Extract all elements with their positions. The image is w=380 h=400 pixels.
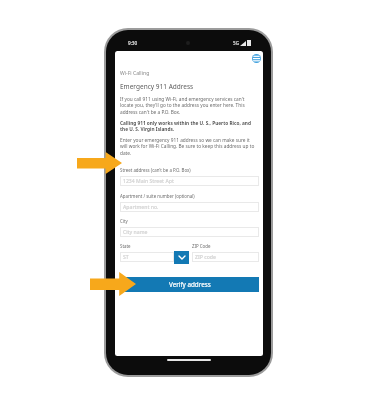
staticText: Emergency 911 Address (120, 82, 194, 91)
button[interactable]: Select state (174, 251, 189, 264)
button[interactable]: ZIP code (192, 252, 259, 262)
staticText: ZIP code (195, 254, 216, 261)
staticText: 1234 Main Street Apt (123, 178, 174, 185)
staticText: City name (123, 229, 148, 236)
staticText: Wi-Fi Calling (120, 70, 150, 77)
staticText: State (120, 243, 131, 249)
staticText: If you call 911 using Wi-Fi, and emergen… (120, 96, 256, 116)
staticText: Calling 911 only works within the U. S.,… (120, 120, 259, 133)
staticText: City (120, 218, 128, 224)
button[interactable]: 1234 Main Street Apt (120, 176, 259, 186)
staticText: 9:30 (128, 40, 138, 46)
button[interactable]: Apartment no. (120, 202, 259, 212)
staticText: Street address (can't be a P.O. Box) (120, 167, 191, 173)
staticText: Verify address (169, 280, 211, 289)
staticText: 5G (233, 40, 239, 46)
button[interactable]: ST (120, 252, 174, 262)
staticText: ZIP Code (192, 243, 211, 249)
staticText: ST (123, 254, 129, 261)
button[interactable]: City name (120, 227, 259, 237)
staticText: Apartment no. (123, 204, 159, 211)
button[interactable]: Account menu (252, 54, 261, 63)
staticText: Enter your emergency 911 address so we c… (120, 137, 256, 157)
staticText: Apartment / suite number (optional) (120, 193, 195, 199)
button[interactable]: Verify address (120, 277, 259, 292)
